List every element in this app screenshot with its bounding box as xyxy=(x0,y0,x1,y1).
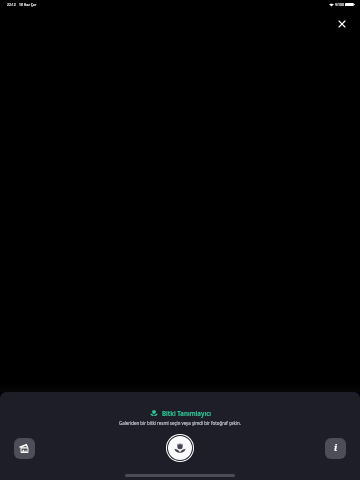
button[interactable]: Kapat xyxy=(331,13,353,35)
staticText: Bitki Tanımlayıcı xyxy=(162,409,211,417)
staticText: i xyxy=(334,441,338,453)
staticText: 22:12 xyxy=(7,2,16,7)
button[interactable]: Fotoğraf çek xyxy=(168,436,192,460)
staticText: Galeriden bir bitki resmi seçin veya şim… xyxy=(0,420,360,426)
button[interactable]: Galeriden seç xyxy=(14,438,35,459)
staticText: %100 xyxy=(335,2,344,7)
staticText: 18 Haz Çar xyxy=(19,2,37,7)
button[interactable]: Bilgi xyxy=(325,438,346,459)
